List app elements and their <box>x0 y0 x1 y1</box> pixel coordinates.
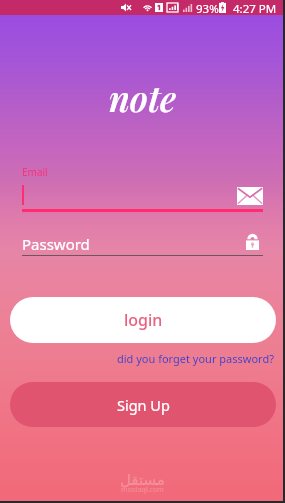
staticText: note <box>109 74 177 121</box>
staticText: Email <box>22 165 48 179</box>
staticText: Password <box>22 234 90 254</box>
button[interactable]: login <box>10 297 276 343</box>
staticText: مستقل <box>120 471 165 488</box>
button[interactable]: did you forget your password? <box>117 351 274 366</box>
staticText: Sign Up <box>117 395 170 415</box>
staticText: 93% <box>196 1 219 16</box>
staticText: mostaql.com <box>121 485 164 495</box>
staticText: did you forget your password? <box>117 351 274 366</box>
staticText: 4:27 PM <box>233 1 277 16</box>
button[interactable]: Sign Up <box>10 382 276 427</box>
staticText: login <box>124 309 163 331</box>
button[interactable]: Email <box>237 187 263 205</box>
button[interactable]: Show password <box>246 235 259 250</box>
